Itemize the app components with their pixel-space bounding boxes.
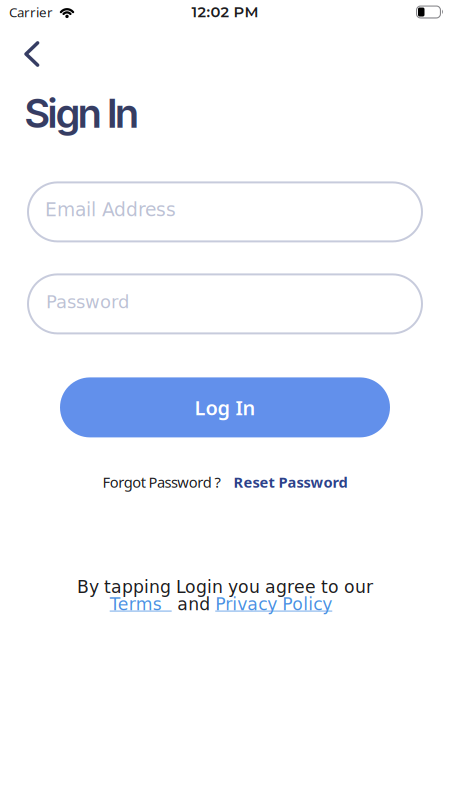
staticText: and <box>177 594 215 614</box>
staticText: Password <box>46 291 129 312</box>
staticText: Email Address <box>45 199 176 221</box>
staticText: Sign In <box>25 89 139 137</box>
staticText: Log In <box>194 394 255 421</box>
staticText: 12:02 PM <box>191 3 258 21</box>
staticText: By tapping Login you agree to our <box>77 577 373 597</box>
staticText: Terms <box>110 594 172 614</box>
staticText: Reset Password <box>234 472 348 492</box>
button[interactable]: Terms <box>110 594 172 614</box>
staticText: Forgot Password ? <box>102 472 221 492</box>
button[interactable]: Log In <box>60 377 390 437</box>
staticText: Privacy Policy <box>215 594 332 614</box>
button[interactable]: Back <box>0 24 40 67</box>
button[interactable]: Reset Password <box>234 472 348 492</box>
staticText: Carrier <box>9 3 53 21</box>
button[interactable]: Privacy Policy <box>215 594 332 614</box>
